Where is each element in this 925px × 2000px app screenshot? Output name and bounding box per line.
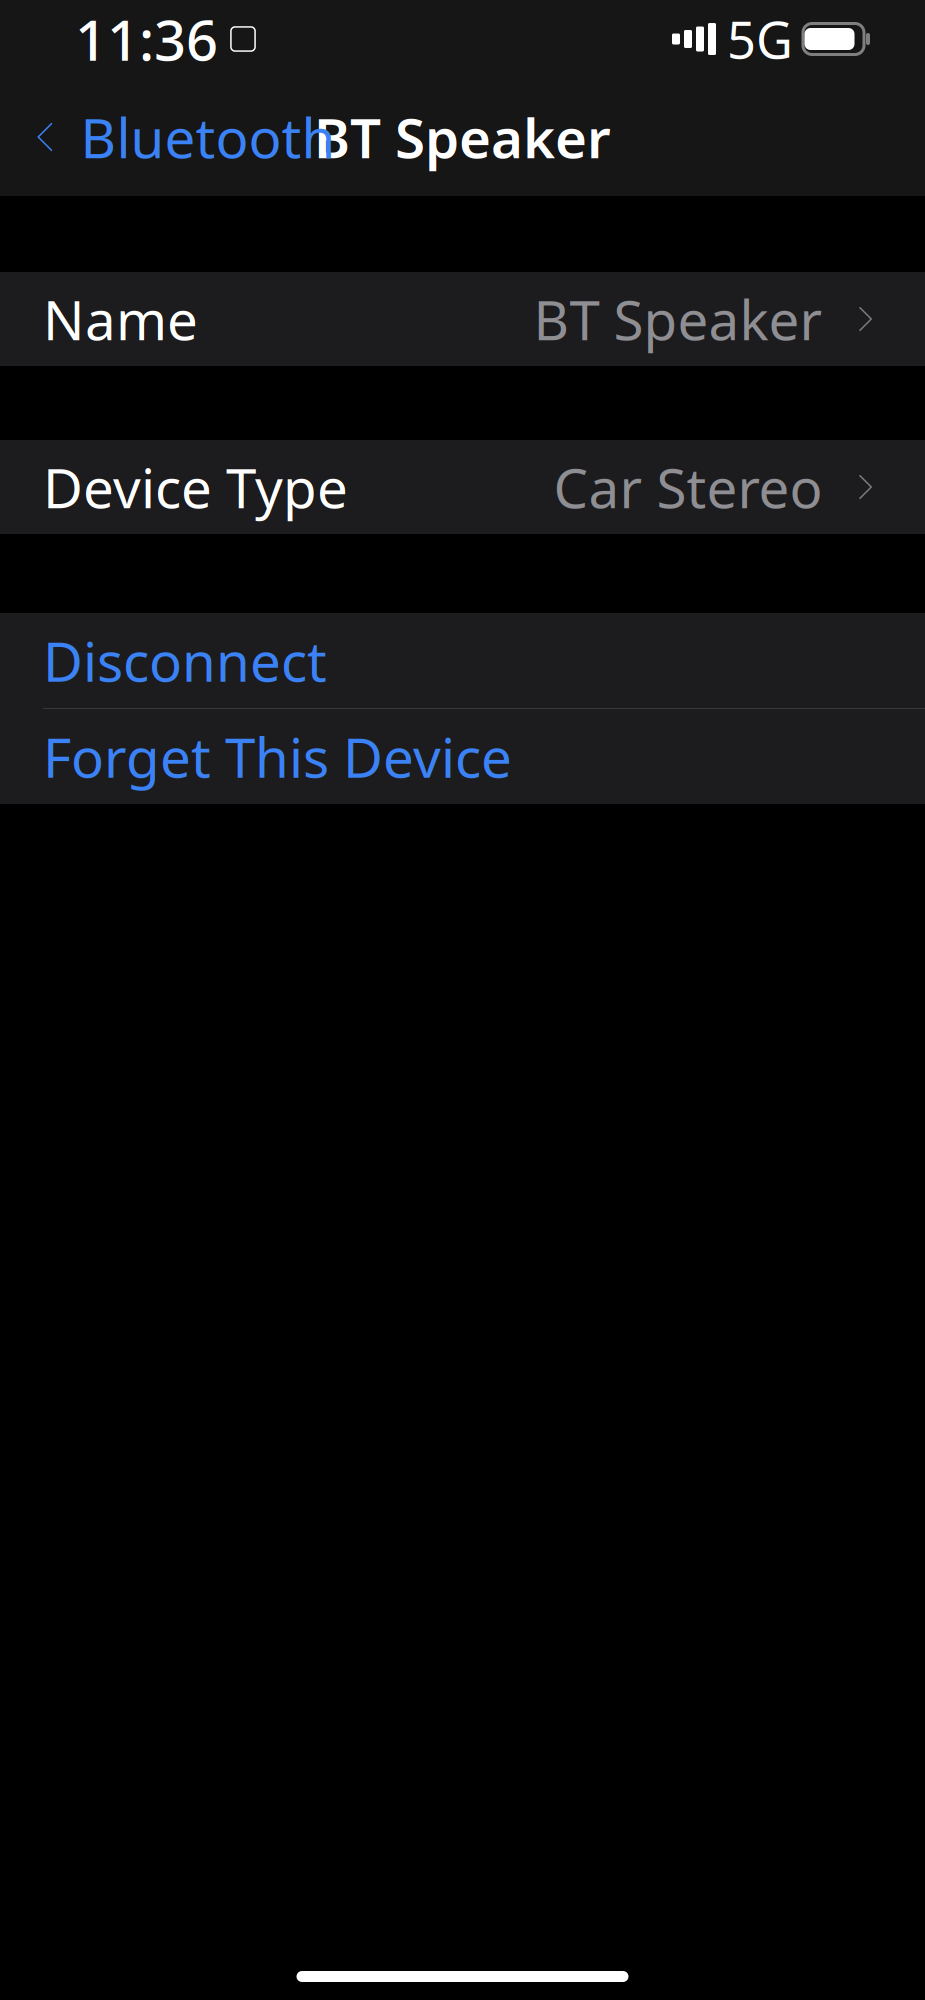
button[interactable]: Bluetooth bbox=[0, 78, 358, 196]
button[interactable]: Device Type bbox=[0, 440, 925, 534]
staticText: Name bbox=[43, 283, 198, 355]
button[interactable]: Name bbox=[0, 272, 925, 366]
button[interactable]: Disconnect bbox=[0, 613, 925, 708]
button[interactable]: Forget This Device bbox=[0, 709, 925, 804]
staticText: Disconnect bbox=[43, 624, 327, 697]
staticText: Bluetooth bbox=[81, 101, 336, 173]
staticText: BT Speaker bbox=[533, 283, 822, 355]
staticText: BT Speaker bbox=[314, 101, 611, 173]
staticText: Forget This Device bbox=[43, 720, 512, 793]
staticText: 5G bbox=[727, 5, 793, 73]
staticText: Device Type bbox=[43, 451, 348, 523]
staticText: Car Stereo bbox=[553, 451, 822, 523]
staticText: 11:36 bbox=[75, 2, 218, 76]
